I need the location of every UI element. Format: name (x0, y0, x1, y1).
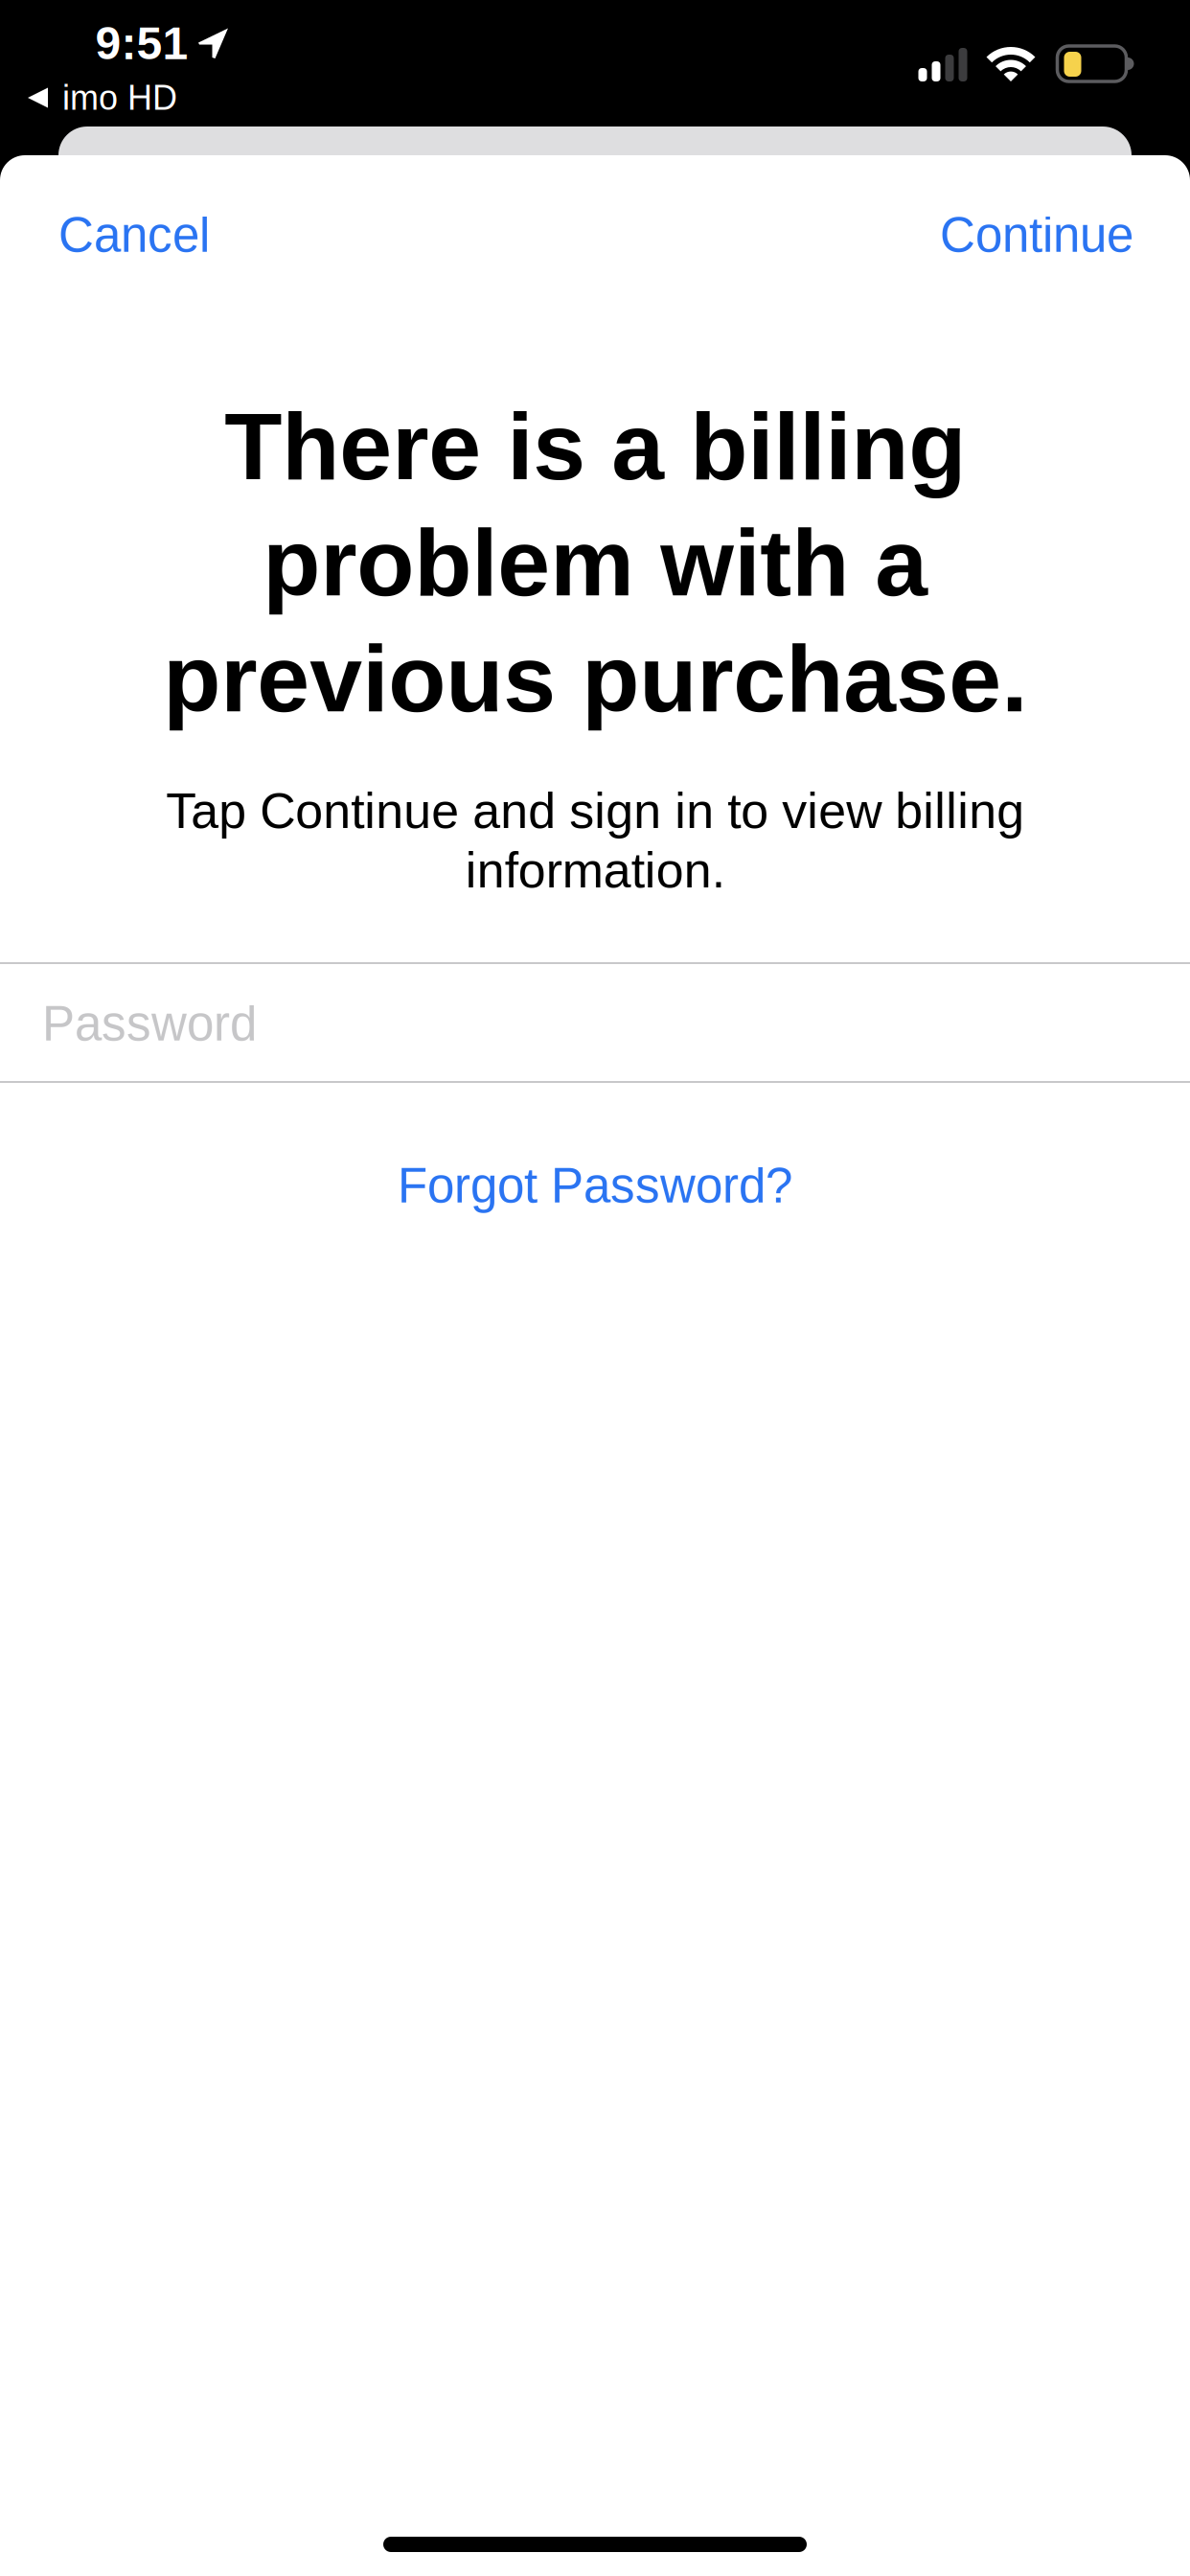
staticText: imo HD (62, 78, 177, 117)
staticText: Password (42, 996, 257, 1051)
staticText: Cancel (58, 207, 210, 262)
staticText: Continue (940, 207, 1133, 262)
staticText: Tap Continue and sign in to view billing… (166, 783, 1024, 898)
staticText: 9:51 (95, 17, 188, 69)
button[interactable]: Password (0, 964, 1190, 1083)
staticText: Forgot Password? (398, 1158, 792, 1213)
staticText: There is a billing problem with a previo… (163, 394, 1027, 731)
button[interactable]: Forgot Password? (327, 1139, 863, 1231)
button[interactable]: Back to imo HD (28, 77, 210, 119)
button[interactable]: Cancel (0, 182, 257, 287)
button[interactable]: Continue (884, 182, 1190, 287)
